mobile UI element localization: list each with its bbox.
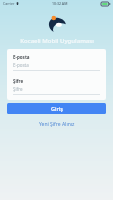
staticText: Yeni Şifre Alınız: [39, 121, 75, 128]
button[interactable]: Yeni Şifre Alınız: [35, 120, 79, 129]
staticText: E-posta: [13, 62, 29, 68]
button[interactable]: Giriş: [7, 103, 106, 114]
staticText: Şifre: [13, 86, 23, 92]
staticText: Carrier: [3, 1, 15, 6]
button[interactable]: E-posta: [13, 62, 100, 71]
staticText: Şifre: [13, 78, 24, 84]
staticText: E-posta: [13, 54, 30, 60]
button[interactable]: Şifre: [13, 86, 100, 95]
staticText: Kocaeli Mobil Uygulaması: [20, 37, 94, 45]
staticText: 10:32 AM: [52, 1, 68, 6]
staticText: Giriş: [51, 105, 63, 112]
